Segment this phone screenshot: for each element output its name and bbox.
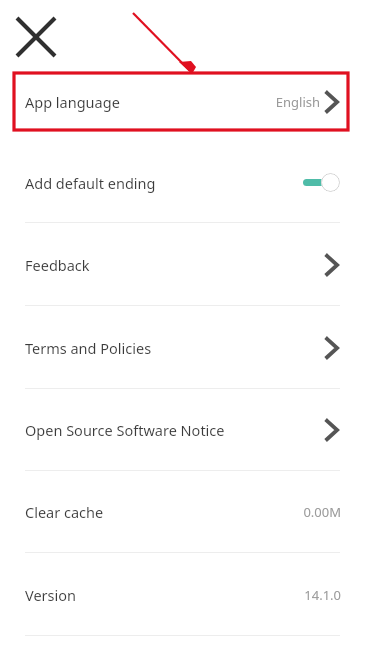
- button[interactable]: Close: [16, 17, 56, 57]
- button[interactable]: [0, 306, 365, 388]
- staticText: Clear cache: [25, 502, 104, 522]
- staticText: Terms and Policies: [25, 338, 152, 358]
- button[interactable]: [0, 553, 365, 635]
- staticText: Open Source Software Notice: [25, 420, 225, 440]
- staticText: Add default ending: [25, 173, 156, 193]
- staticText: Feedback: [25, 255, 90, 275]
- staticText: App language: [25, 92, 120, 112]
- button[interactable]: [0, 72, 365, 132]
- staticText: English: [240, 93, 320, 113]
- staticText: Version: [25, 585, 76, 605]
- button[interactable]: [0, 148, 365, 218]
- button[interactable]: [0, 471, 365, 552]
- button[interactable]: [0, 223, 365, 305]
- staticText: 14.1.0: [261, 586, 341, 606]
- button[interactable]: [0, 389, 365, 470]
- staticText: 0.00M: [261, 503, 341, 523]
